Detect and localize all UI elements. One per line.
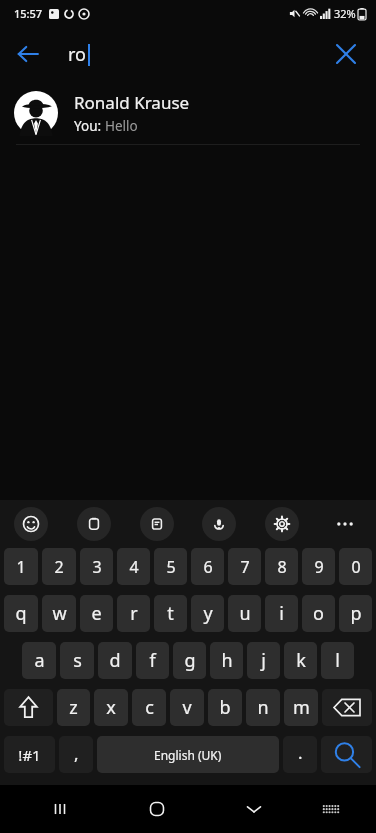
button[interactable]: English (UK)	[97, 736, 279, 773]
staticText: 15:57	[14, 6, 43, 21]
button[interactable]: Home	[134, 786, 180, 832]
button[interactable]: 1	[4, 548, 38, 585]
staticText: n	[257, 695, 269, 720]
button[interactable]: 8	[265, 548, 298, 585]
staticText: 2	[54, 556, 64, 578]
button[interactable]: y	[191, 595, 224, 632]
button[interactable]: Shift	[4, 689, 53, 726]
staticText: !#1	[18, 745, 41, 765]
button[interactable]: ,	[59, 736, 93, 773]
staticText: y	[203, 601, 213, 626]
button[interactable]: Back	[6, 32, 50, 76]
staticText: j	[261, 648, 266, 673]
button[interactable]: k	[284, 642, 317, 679]
staticText: v	[182, 695, 192, 720]
staticText: .	[298, 741, 303, 764]
staticText: 3	[92, 556, 102, 578]
button[interactable]: Backspace	[322, 689, 372, 726]
button[interactable]: o	[302, 595, 335, 632]
button[interactable]: v	[170, 689, 204, 726]
button[interactable]: i	[265, 595, 298, 632]
staticText: z	[69, 695, 78, 720]
staticText: 5	[166, 556, 176, 578]
button[interactable]: 5	[154, 548, 187, 585]
staticText: e	[91, 601, 102, 626]
staticText: 32%	[334, 6, 356, 21]
button[interactable]: 4	[117, 548, 150, 585]
staticText: 1	[16, 556, 26, 578]
button[interactable]: q	[4, 595, 38, 632]
button[interactable]: !#1	[4, 736, 55, 773]
staticText: g	[184, 648, 196, 673]
staticText: d	[109, 648, 121, 673]
staticText: 9	[314, 556, 324, 578]
button[interactable]: 0	[339, 548, 372, 585]
button[interactable]: Ronald Krause	[0, 82, 376, 144]
button[interactable]: 9	[302, 548, 335, 585]
button[interactable]: n	[246, 689, 280, 726]
staticText: 4	[129, 556, 139, 578]
button[interactable]: f	[136, 642, 169, 679]
staticText: w	[52, 601, 67, 626]
staticText: 8	[277, 556, 287, 578]
staticText: x	[106, 695, 116, 720]
button[interactable]: t	[154, 595, 187, 632]
staticText: f	[149, 648, 156, 673]
staticText: k	[296, 648, 306, 673]
staticText: Hello	[105, 117, 138, 135]
button[interactable]: s	[60, 642, 94, 679]
staticText: o	[313, 601, 324, 626]
staticText: t	[167, 601, 174, 626]
button[interactable]: e	[80, 595, 113, 632]
button[interactable]: Recents	[37, 786, 83, 832]
button[interactable]: 7	[228, 548, 261, 585]
button[interactable]: Search	[321, 736, 372, 773]
button[interactable]: Clipboard	[77, 507, 111, 541]
staticText: b	[219, 695, 231, 720]
button[interactable]: Voice input	[202, 507, 236, 541]
staticText: English (UK)	[154, 747, 222, 763]
staticText: ,	[74, 742, 79, 765]
staticText: 0	[351, 556, 361, 578]
button[interactable]: p	[339, 595, 372, 632]
staticText: Ronald Krause	[74, 91, 190, 114]
button[interactable]: c	[132, 689, 166, 726]
staticText: 7	[240, 556, 250, 578]
staticText: i	[279, 601, 284, 626]
button[interactable]: Text stickers	[140, 507, 174, 541]
button[interactable]: x	[94, 689, 128, 726]
button[interactable]: Emoji	[14, 507, 48, 541]
staticText: You:	[74, 117, 105, 135]
staticText: m	[293, 695, 310, 720]
staticText: q	[15, 601, 27, 626]
button[interactable]: Hide keyboard	[231, 786, 277, 832]
button[interactable]: u	[228, 595, 261, 632]
button[interactable]: b	[208, 689, 242, 726]
button[interactable]: More options	[328, 507, 362, 541]
button[interactable]: w	[42, 595, 76, 632]
staticText: r	[130, 601, 138, 626]
button[interactable]: 6	[191, 548, 224, 585]
button[interactable]: r	[117, 595, 150, 632]
button[interactable]: m	[284, 689, 318, 726]
staticText: 6	[203, 556, 213, 578]
button[interactable]: Clear	[324, 32, 368, 76]
button[interactable]: .	[283, 736, 317, 773]
button[interactable]: h	[210, 642, 243, 679]
button[interactable]: Keyboard settings	[265, 507, 299, 541]
button[interactable]: a	[22, 642, 56, 679]
staticText: l	[335, 648, 340, 673]
staticText: u	[239, 601, 251, 626]
button[interactable]: g	[173, 642, 206, 679]
button[interactable]: d	[98, 642, 132, 679]
staticText: p	[350, 601, 362, 626]
button[interactable]: l	[321, 642, 354, 679]
button[interactable]: j	[247, 642, 280, 679]
button[interactable]: 2	[42, 548, 76, 585]
staticText: s	[73, 648, 82, 673]
staticText: c	[145, 695, 154, 720]
button[interactable]: 3	[80, 548, 113, 585]
button[interactable]: Switch keyboard	[308, 786, 354, 832]
button[interactable]: z	[57, 689, 90, 726]
staticText: ro	[68, 42, 86, 67]
